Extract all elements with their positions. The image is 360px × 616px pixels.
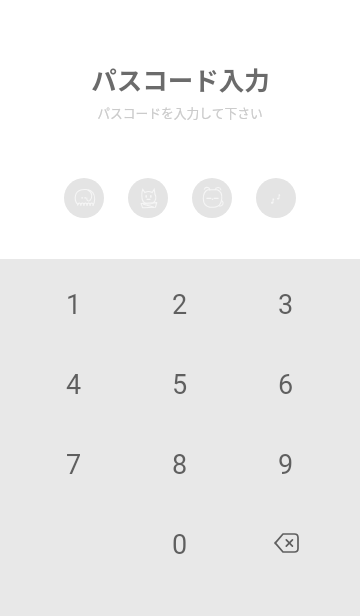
staticText: 9 (278, 449, 294, 481)
button[interactable]: 5 (127, 345, 233, 425)
staticText: 4 (66, 369, 82, 401)
button[interactable]: 0 (127, 505, 233, 585)
button[interactable]: Cat (128, 178, 168, 218)
button[interactable]: 2 (127, 265, 233, 345)
button[interactable]: 8 (127, 425, 233, 505)
staticText: 2 (172, 289, 188, 321)
staticText: 7 (66, 449, 82, 481)
button[interactable]: 4 (21, 345, 127, 425)
button[interactable]: Dog (64, 178, 104, 218)
staticText: パスコードを入力して下さい (97, 103, 263, 121)
button[interactable]: Backspace (233, 505, 339, 585)
staticText: パスコード入力 (91, 60, 270, 97)
button[interactable]: 6 (233, 345, 339, 425)
button[interactable]: Music (256, 178, 296, 218)
staticText: 0 (172, 529, 188, 561)
staticText: 1 (66, 289, 82, 321)
staticText: 8 (172, 449, 188, 481)
staticText: 6 (278, 369, 294, 401)
button[interactable]: Bear (192, 178, 232, 218)
staticText: 3 (278, 289, 294, 321)
button[interactable]: 3 (233, 265, 339, 345)
button[interactable]: 7 (21, 425, 127, 505)
button[interactable]: 9 (233, 425, 339, 505)
button[interactable]: 1 (21, 265, 127, 345)
staticText: 5 (172, 369, 188, 401)
